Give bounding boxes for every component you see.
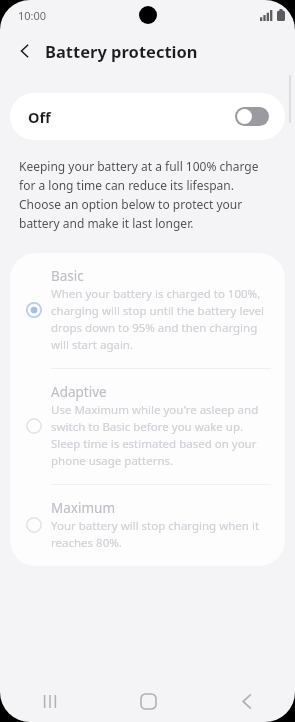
button[interactable]: Basic xyxy=(10,253,285,368)
button[interactable]: Off xyxy=(10,93,285,140)
staticText: Use Maximum while you're asleep and swit… xyxy=(51,402,271,469)
staticText: Maximum xyxy=(51,499,116,517)
staticText: Off xyxy=(28,107,235,127)
staticText: Adaptive xyxy=(51,383,107,401)
staticText: Keeping your battery at a full 100% char… xyxy=(19,158,277,231)
button[interactable]: Maximum xyxy=(10,485,285,566)
button[interactable]: Recent apps xyxy=(0,680,99,722)
staticText: Your battery will stop charging when it … xyxy=(51,518,271,551)
button[interactable]: Navigate up xyxy=(8,34,42,68)
button[interactable]: Home xyxy=(99,680,197,722)
staticText: 10:00 xyxy=(18,8,47,23)
staticText: Basic xyxy=(51,267,84,285)
button[interactable]: Back xyxy=(197,680,295,722)
button[interactable]: Adaptive xyxy=(10,369,285,484)
staticText: When your battery is charged to 100%, ch… xyxy=(51,286,271,353)
staticText: Battery protection xyxy=(45,40,198,62)
